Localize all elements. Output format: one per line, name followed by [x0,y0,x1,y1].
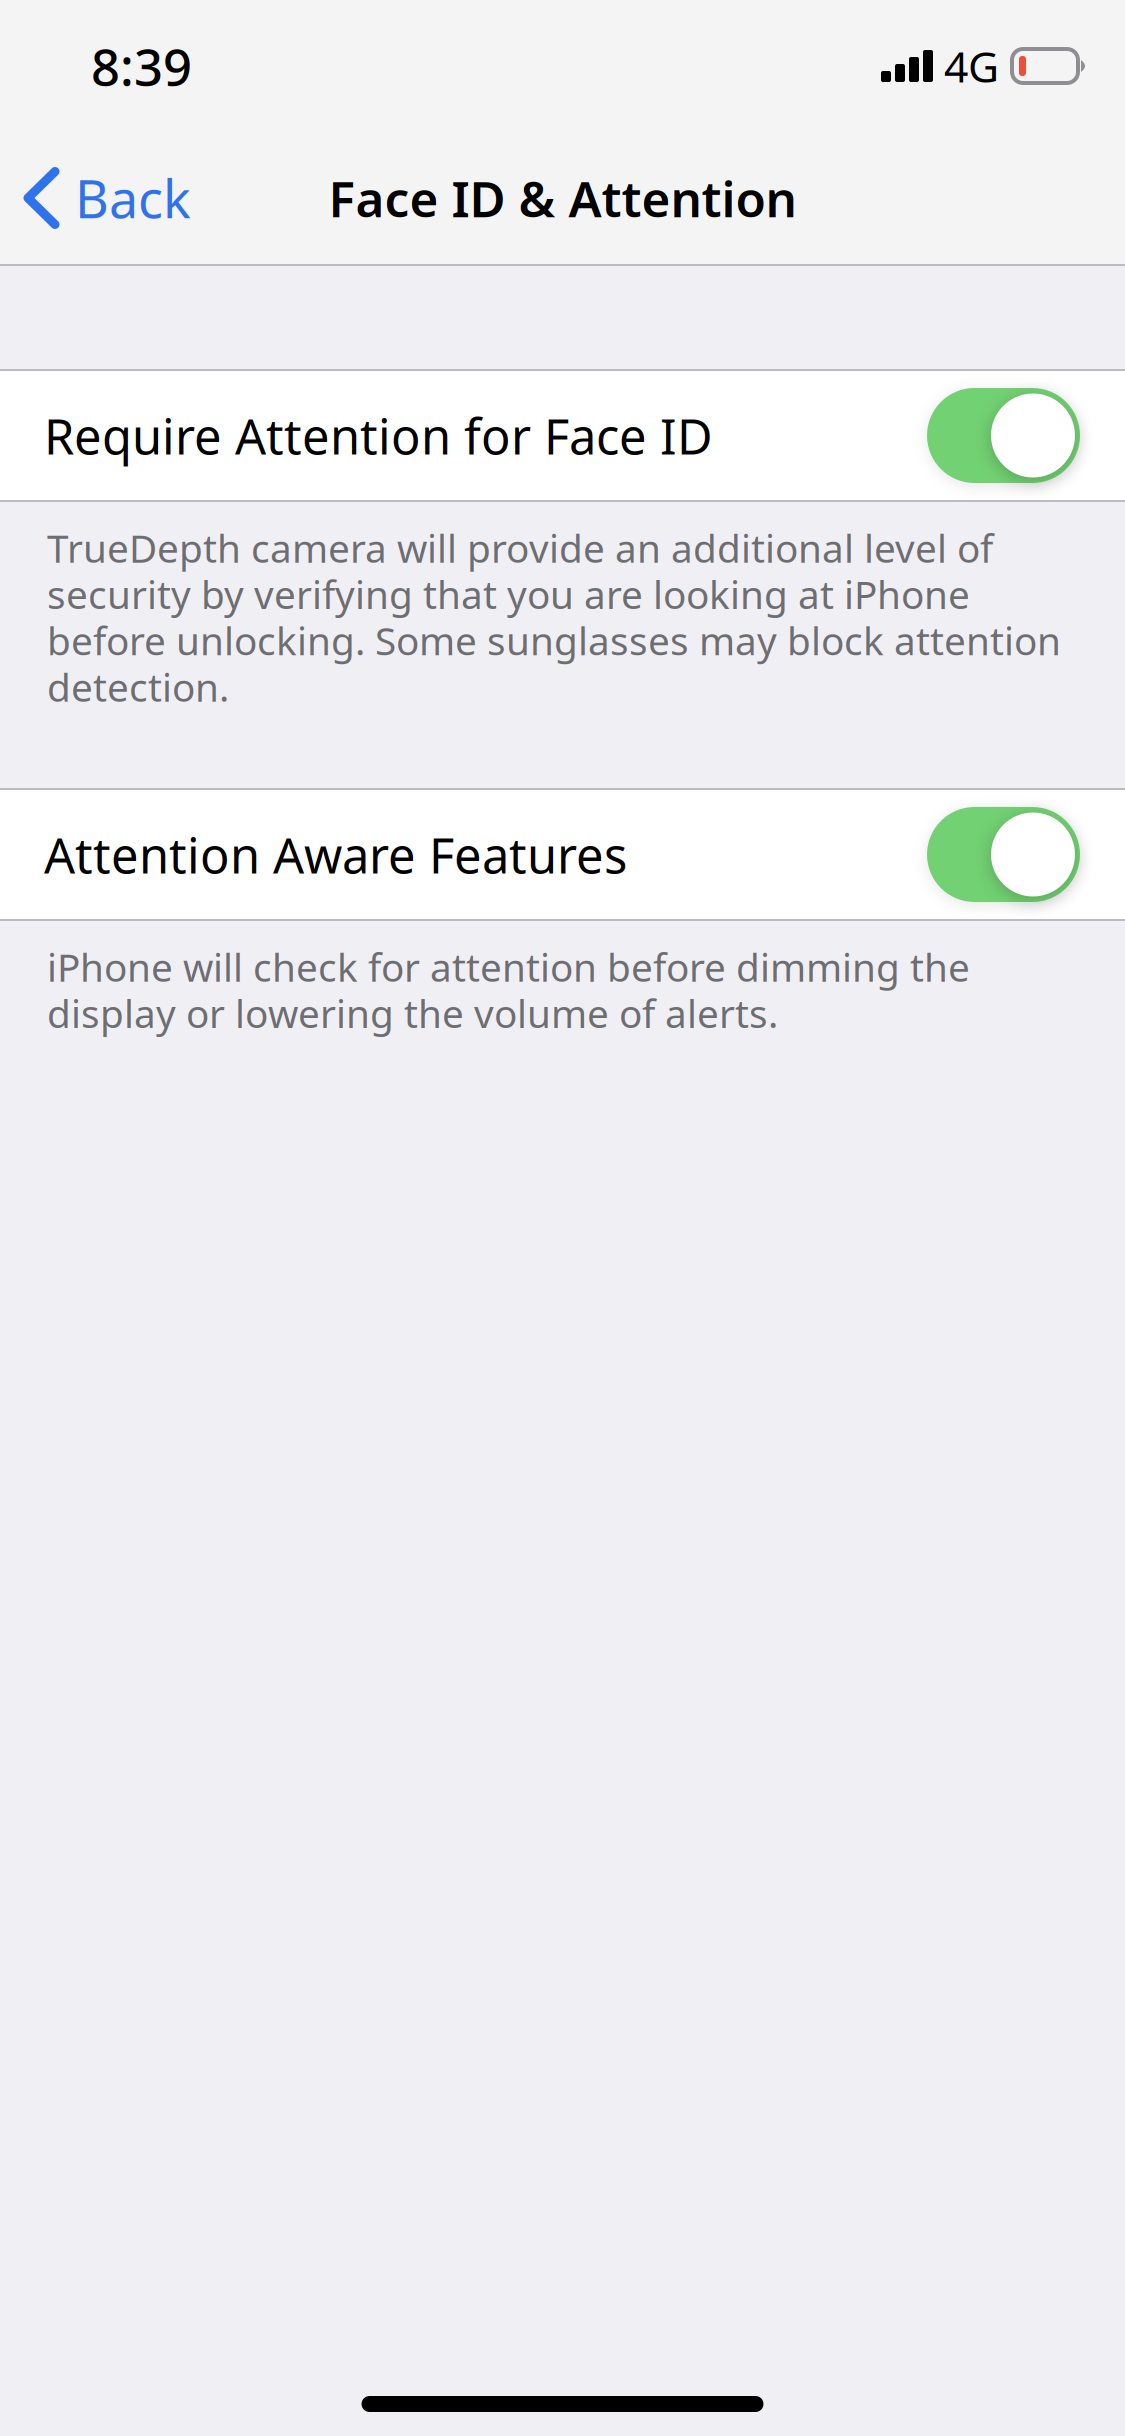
button[interactable]: Attention Aware Features [0,790,1125,919]
button[interactable]: Require Attention for Face ID [0,371,1125,500]
button[interactable]: Back [0,132,215,264]
staticText: TrueDepth camera will provide an additio… [47,522,1061,712]
staticText: Back [75,163,191,233]
staticText: iPhone will check for attention before d… [47,941,970,1039]
staticText: Face ID & Attention [328,165,796,231]
staticText: Require Attention for Face ID [44,403,713,468]
staticText: Attention Aware Features [44,822,627,887]
staticText: 8:39 [91,32,192,100]
staticText: 4G [944,38,999,94]
